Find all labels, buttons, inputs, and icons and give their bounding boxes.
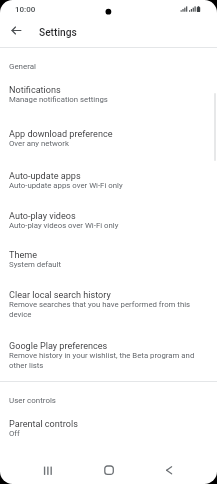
staticText: Google Play preferences: [9, 340, 108, 351]
staticText: Clear local search history: [9, 289, 111, 300]
staticText: General: [9, 62, 36, 71]
button[interactable]: Google Play preferences: [0, 333, 217, 373]
button[interactable]: Home: [94, 456, 124, 484]
button[interactable]: Parental controls: [0, 411, 217, 451]
button[interactable]: Back: [154, 456, 184, 484]
staticText: Over any network: [9, 138, 69, 148]
staticText: Manage notification settings: [9, 94, 108, 104]
staticText: Parental controls: [9, 418, 78, 429]
staticText: Off: [9, 428, 20, 438]
staticText: System default: [9, 259, 62, 269]
staticText: Remove history in your wishlist, the Bet…: [9, 350, 204, 370]
staticText: Remove searches that you have performed …: [9, 299, 204, 319]
button[interactable]: Notifications: [0, 77, 217, 117]
staticText: Auto-update apps: [9, 170, 81, 181]
button[interactable]: Clear local search history: [0, 282, 217, 322]
staticText: App download preference: [9, 128, 113, 139]
staticText: Theme: [9, 249, 38, 260]
staticText: 10:00: [15, 5, 36, 14]
button[interactable]: Back: [5, 20, 27, 42]
staticText: Notifications: [9, 84, 61, 95]
button[interactable]: Auto-update apps: [0, 163, 217, 203]
staticText: User controls: [9, 396, 56, 405]
button[interactable]: App download preference: [0, 121, 217, 161]
staticText: Auto-play videos over Wi-Fi only: [9, 220, 119, 230]
button[interactable]: Recent apps: [33, 456, 63, 484]
button[interactable]: Theme: [0, 242, 217, 282]
staticText: Auto-play videos: [9, 210, 76, 221]
staticText: Auto-update apps over Wi-Fi only: [9, 180, 123, 190]
staticText: Settings: [39, 26, 77, 38]
button[interactable]: Auto-play videos: [0, 203, 217, 243]
